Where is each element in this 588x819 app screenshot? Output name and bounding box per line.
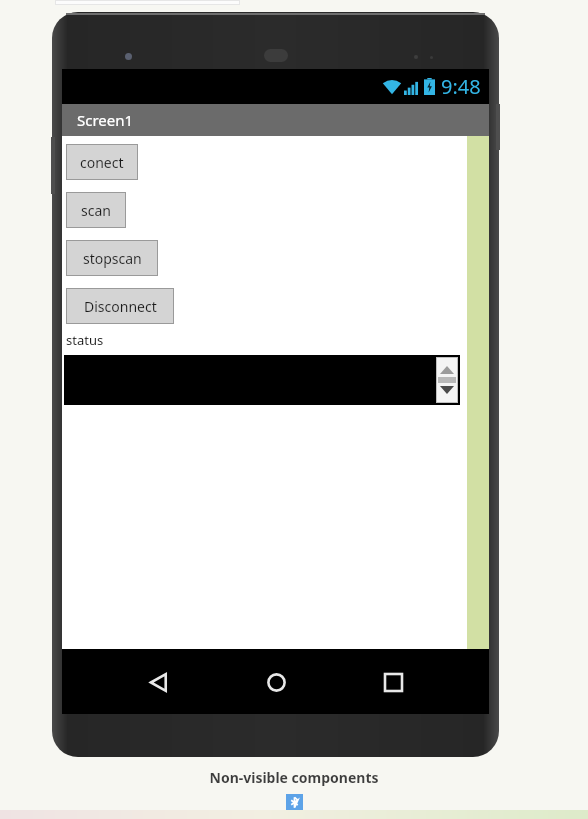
button[interactable]: Back: [138, 662, 178, 702]
staticText: stopscan: [83, 249, 142, 268]
staticText: conect: [80, 153, 124, 172]
staticText: status: [66, 331, 104, 349]
staticText: scan: [81, 201, 111, 220]
button[interactable]: Scroll: [436, 357, 458, 403]
staticText: 9:48: [441, 73, 481, 100]
button[interactable]: scan: [66, 192, 126, 228]
button[interactable]: stopscan: [66, 240, 158, 276]
button[interactable]: Scroll: [64, 355, 460, 405]
staticText: Screen1: [77, 110, 134, 130]
button[interactable]: BluetoothLE component: [286, 794, 303, 811]
staticText: Non-visible components: [209, 768, 379, 787]
button[interactable]: Disconnect: [66, 288, 174, 324]
button[interactable]: Recent apps: [373, 662, 413, 702]
button[interactable]: conect: [66, 144, 138, 180]
staticText: Disconnect: [84, 297, 157, 316]
button[interactable]: Home: [256, 662, 296, 702]
